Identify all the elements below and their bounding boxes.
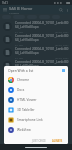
- button[interactable]: Info: [61, 68, 66, 73]
- button[interactable]: HTML Viewer: [4, 95, 68, 105]
- button[interactable]: Smartphone Link: [4, 115, 68, 125]
- button[interactable]: Chrome: [4, 75, 68, 85]
- staticText: SAS B Home: [9, 6, 33, 11]
- button[interactable]: Home gesture: [25, 147, 47, 148]
- staticText: Docs: [17, 88, 25, 92]
- staticText: Connected 20004-B_10101_Lenb B0 64_LeHSs…: [15, 47, 69, 55]
- button[interactable]: 3D Tableller: [4, 105, 68, 115]
- staticText: JUST ONCE: [32, 139, 46, 143]
- staticText: Open With a list: [8, 68, 34, 73]
- staticText: 2.1 MB: [15, 30, 23, 33]
- button[interactable]: WebView: [4, 125, 68, 135]
- button[interactable]: Menu: [2, 7, 8, 13]
- button[interactable]: Connected 20004-B_10101_Lenb B0 64_LeHSs…: [0, 33, 72, 46]
- staticText: ALWAYS: [52, 139, 63, 143]
- staticText: WebView: [17, 128, 31, 132]
- staticText: 2.1 MB: [15, 69, 23, 72]
- staticText: Connected 20004-B_10101_Lenb B0 64_LeHSs…: [15, 34, 69, 42]
- staticText: Connected 20004-B_10101_Lenb B0 64_LeHSs…: [15, 60, 69, 68]
- staticText: Smartphone Link: [17, 118, 43, 122]
- staticText: Jan 20, 2021: [55, 43, 69, 46]
- button[interactable]: Search: [57, 6, 64, 13]
- staticText: 2.1 MB: [15, 43, 23, 46]
- staticText: Connected 20004-B_10101_Lenb B0 64_LeHSs…: [15, 21, 69, 29]
- staticText: Jan 20, 2021: [55, 69, 69, 72]
- staticText: Jan 20, 2021: [55, 56, 69, 59]
- staticText: 12 items: [9, 11, 20, 14]
- staticText: 3D Tableller: [17, 108, 35, 112]
- staticText: HTML Viewer: [17, 98, 37, 102]
- button[interactable]: ALWAYS: [50, 138, 65, 144]
- staticText: 2.1 MB: [15, 56, 23, 59]
- staticText: 9:41: [2, 1, 8, 5]
- staticText: Chrome: [17, 78, 29, 82]
- staticText: Jan 20, 2021: [55, 30, 69, 33]
- button[interactable]: More options: [64, 7, 70, 13]
- button[interactable]: JUST ONCE: [30, 138, 48, 144]
- button[interactable]: Connected 20004-B_10101_Lenb B0 64_LeHSs…: [0, 46, 72, 59]
- button[interactable]: Connected 20004-B_10101_Lenb B0 64_LeHSs…: [0, 59, 72, 72]
- button[interactable]: Connected 20004-B_10101_Lenb B0 64_LeHSs…: [0, 20, 72, 33]
- button[interactable]: Docs: [4, 85, 68, 95]
